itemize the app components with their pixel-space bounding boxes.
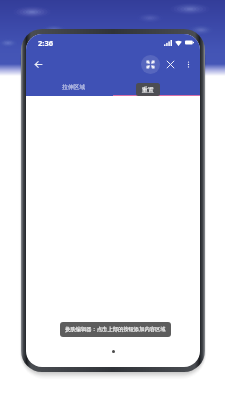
button[interactable]: 内容区域: [113, 77, 200, 96]
button[interactable]: 重置: [136, 83, 160, 96]
staticText: 拉伸区域: [62, 83, 86, 90]
button[interactable]: 换肤编辑器：点击上部的按钮添加内容区域: [65, 326, 166, 333]
button[interactable]: Fit to screen: [141, 55, 160, 74]
staticText: 2:36: [38, 38, 53, 48]
staticText: 重置: [142, 86, 154, 94]
button[interactable]: Close: [161, 55, 180, 74]
button[interactable]: Back: [26, 52, 50, 76]
staticText: 换肤编辑器：点击上部的按钮添加内容区域: [65, 326, 166, 333]
button[interactable]: 拉伸区域: [26, 77, 113, 96]
staticText: 内容区域: [146, 83, 168, 90]
button[interactable]: More options: [180, 56, 197, 73]
